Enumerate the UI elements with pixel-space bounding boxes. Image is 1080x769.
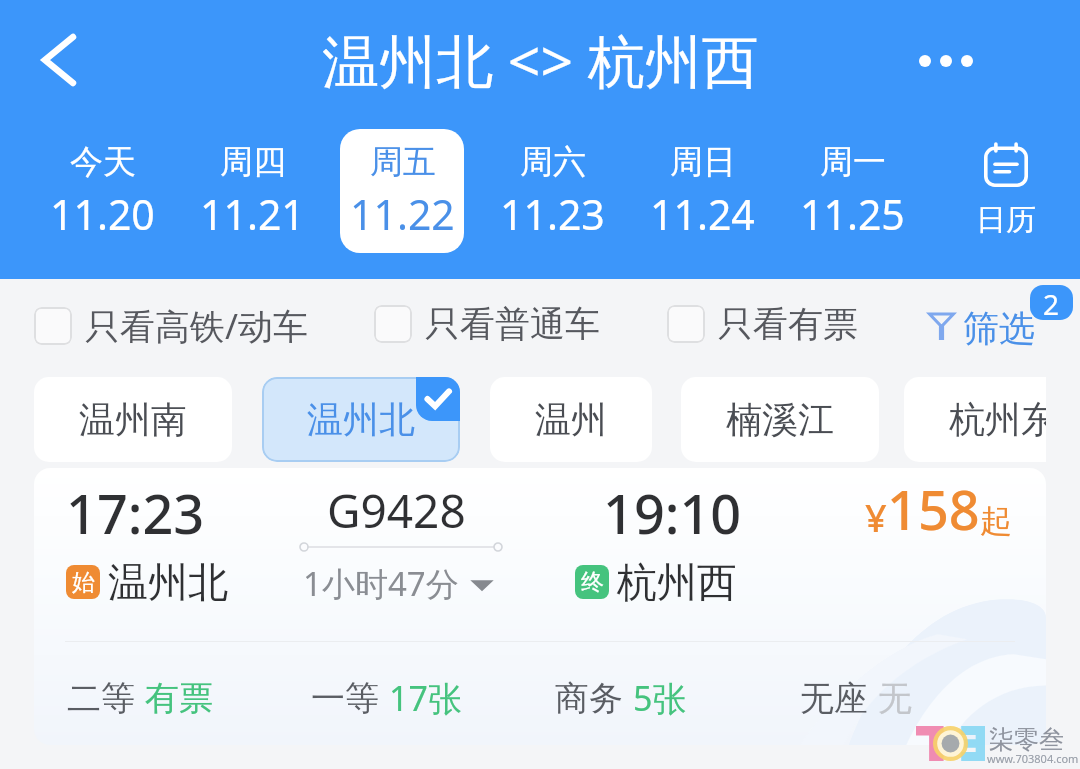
staticText: 今天 xyxy=(70,141,136,183)
staticText: 158 xyxy=(887,472,980,546)
button[interactable]: 今天 xyxy=(40,129,164,253)
staticText: 周六 xyxy=(520,141,586,183)
button[interactable]: 周一 xyxy=(790,129,914,253)
staticText: 二等 xyxy=(67,677,135,720)
button[interactable]: 只看普通车 xyxy=(374,302,600,346)
staticText: 11.24 xyxy=(650,186,755,242)
button[interactable]: 只看高铁/动车 xyxy=(34,302,309,350)
staticText: 商务 xyxy=(555,677,623,720)
staticText: 始 xyxy=(72,568,95,597)
staticText: 温州北 <> 杭州西 xyxy=(322,21,759,99)
staticText: 11.22 xyxy=(350,186,455,242)
staticText: 11.20 xyxy=(50,186,155,242)
staticText: www.703804.com xyxy=(987,751,1079,766)
staticText: 日历 xyxy=(976,201,1036,239)
staticText: 周一 xyxy=(820,141,886,183)
button[interactable]: Calendar xyxy=(944,129,1068,253)
staticText: 17:23 xyxy=(66,476,205,550)
staticText: 11.23 xyxy=(500,186,605,242)
button[interactable]: 只看有票 xyxy=(667,302,858,346)
staticText: 温州 xyxy=(535,397,607,442)
staticText: 17张 xyxy=(389,675,462,721)
button[interactable]: Back xyxy=(16,14,102,106)
staticText: 11.21 xyxy=(200,186,305,242)
staticText: 温州南 xyxy=(79,397,187,442)
staticText: 只看普通车 xyxy=(425,302,600,346)
staticText: 周四 xyxy=(220,141,286,183)
staticText: 周日 xyxy=(670,141,736,183)
button[interactable]: 17:23 xyxy=(34,468,1046,745)
staticText: 只看有票 xyxy=(718,302,858,346)
staticText: 一等 xyxy=(311,677,379,720)
staticText: 11.25 xyxy=(800,186,905,242)
staticText: 柒零叁 xyxy=(989,724,1064,755)
button[interactable]: 周四 xyxy=(190,129,314,253)
staticText: 温州北 xyxy=(108,557,228,607)
staticText: 无 xyxy=(878,677,912,720)
staticText: 19:10 xyxy=(603,476,742,550)
button[interactable]: 周五 xyxy=(340,129,464,253)
staticText: 无座 xyxy=(800,677,868,720)
staticText: 终 xyxy=(581,568,604,597)
staticText: G9428 xyxy=(327,479,466,542)
button[interactable]: 楠溪江 xyxy=(681,377,879,462)
staticText: 起 xyxy=(980,501,1012,541)
staticText: 2 xyxy=(1043,285,1060,320)
button[interactable]: 温州南 xyxy=(34,377,232,462)
staticText: 筛选 xyxy=(963,306,1035,351)
staticText: 温州北 xyxy=(307,397,415,442)
button[interactable]: More options xyxy=(898,16,994,106)
button[interactable]: 温州北 xyxy=(262,377,460,462)
button[interactable]: 杭州东 xyxy=(904,377,1046,462)
staticText: ¥ xyxy=(865,491,887,543)
button[interactable]: 温州 xyxy=(490,377,652,462)
staticText: 1小时47分 xyxy=(303,561,459,606)
staticText: 5张 xyxy=(633,675,687,721)
staticText: 杭州西 xyxy=(617,557,737,607)
staticText: 杭州东 xyxy=(949,397,1046,442)
staticText: 有票 xyxy=(145,677,213,720)
button[interactable]: 筛选 xyxy=(918,293,1044,353)
button[interactable]: 周六 xyxy=(490,129,614,253)
staticText: 楠溪江 xyxy=(726,397,834,442)
button[interactable]: 周日 xyxy=(640,129,764,253)
staticText: 只看高铁/动车 xyxy=(85,302,309,350)
staticText: 周五 xyxy=(370,141,436,183)
